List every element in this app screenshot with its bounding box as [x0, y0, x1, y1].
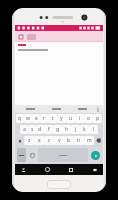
staticText: u [69, 115, 73, 122]
button[interactable]: Suggestion [43, 108, 69, 110]
staticText: f [48, 126, 50, 133]
button[interactable]: Suggestion [17, 108, 43, 110]
staticText: t [52, 115, 54, 122]
button[interactable]: Keyboard settings [95, 105, 101, 113]
button[interactable]: s [28, 125, 36, 134]
button[interactable]: Shift [16, 136, 24, 145]
button[interactable]: n [74, 136, 84, 145]
staticText: h [65, 126, 69, 133]
button[interactable]: v [54, 136, 64, 145]
button[interactable]: c [44, 136, 54, 145]
button[interactable]: m [84, 136, 94, 145]
staticText: k [83, 126, 86, 133]
staticText: n [77, 137, 81, 144]
button[interactable]: i [75, 114, 84, 123]
staticText: d [38, 126, 42, 133]
button[interactable]: h [62, 125, 71, 134]
staticText: o [87, 115, 91, 122]
button[interactable]: Space [38, 148, 88, 162]
button[interactable]: x [34, 136, 44, 145]
button[interactable]: Symbols [17, 148, 26, 162]
staticText: w [26, 115, 30, 122]
staticText: g [56, 126, 60, 133]
button[interactable]: a [20, 125, 28, 134]
button[interactable]: z [24, 136, 34, 145]
button[interactable]: Emoji [27, 147, 37, 163]
button[interactable]: Conversation title [27, 34, 36, 40]
staticText: m [87, 137, 92, 144]
staticText: p [96, 115, 100, 122]
button[interactable]: k [80, 125, 89, 134]
button[interactable]: Back [18, 34, 24, 40]
button[interactable]: g [53, 125, 62, 134]
button[interactable]: j [71, 125, 80, 134]
staticText: y [60, 115, 63, 122]
button[interactable]: e [32, 114, 40, 123]
button[interactable]: t [48, 114, 57, 123]
button[interactable]: Home [66, 165, 75, 174]
staticText: x [38, 137, 41, 144]
button[interactable]: l [89, 125, 98, 134]
staticText: v [58, 137, 61, 144]
staticText: e [35, 115, 38, 122]
staticText: i [79, 115, 81, 122]
button[interactable]: Send [91, 151, 100, 160]
button[interactable]: u [66, 114, 75, 123]
staticText: l [93, 126, 95, 133]
button[interactable]: Hide keyboard [19, 165, 28, 174]
staticText: s [31, 126, 34, 133]
staticText: a [23, 126, 26, 133]
staticText: q [18, 115, 22, 122]
button[interactable]: q [16, 114, 24, 123]
button[interactable]: o [84, 114, 93, 123]
button[interactable]: Recent apps [43, 165, 52, 174]
staticText: j [75, 126, 77, 133]
button[interactable]: w [24, 114, 32, 123]
staticText: r [43, 115, 46, 122]
button[interactable]: Back [90, 165, 99, 174]
button[interactable]: f [44, 125, 53, 134]
staticText: b [67, 137, 71, 144]
button[interactable]: Suggestion [69, 108, 95, 110]
staticText: c [48, 137, 51, 144]
button[interactable]: y [57, 114, 66, 123]
button[interactable]: Backspace [94, 136, 102, 145]
button[interactable]: d [36, 125, 44, 134]
button[interactable]: b [64, 136, 74, 145]
button[interactable]: p [93, 114, 102, 123]
button[interactable]: Home [47, 180, 71, 189]
button[interactable]: r [40, 114, 48, 123]
staticText: z [28, 137, 31, 144]
